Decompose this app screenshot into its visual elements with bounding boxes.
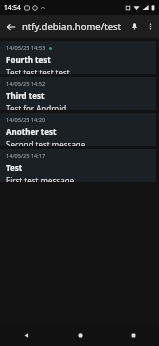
- button[interactable]: 14/05/25 14:53: [0, 41, 156, 74]
- staticText: 14/05/25 14:52: [6, 80, 46, 88]
- staticText: Test test test test: [6, 67, 70, 74]
- button[interactable]: Home: [68, 324, 92, 346]
- staticText: 14/05/25 14:20: [6, 116, 46, 124]
- staticText: 14/05/25 14:53: [6, 44, 46, 52]
- staticText: First test message: [6, 175, 75, 182]
- staticText: 14:54: [4, 3, 21, 12]
- staticText: ntfy.debian.home/test: [22, 20, 125, 33]
- button[interactable]: Back: [14, 324, 38, 346]
- staticText: Test for Android: [6, 103, 67, 110]
- staticText: Third test: [6, 90, 45, 101]
- staticText: Test: [6, 162, 23, 173]
- staticText: 14/05/25 14:17: [6, 152, 46, 160]
- staticText: Second test message: [6, 139, 86, 146]
- button[interactable]: More options: [143, 15, 157, 38]
- button[interactable]: Back: [0, 15, 22, 38]
- staticText: Fourth test: [6, 54, 51, 65]
- staticText: Another test: [6, 126, 57, 137]
- button[interactable]: Recent apps: [121, 324, 145, 346]
- button[interactable]: 14/05/25 14:17: [0, 149, 156, 182]
- button[interactable]: 14/05/25 14:20: [0, 113, 156, 146]
- button[interactable]: 14/05/25 14:52: [0, 77, 156, 110]
- button[interactable]: Notifications: [125, 15, 143, 38]
